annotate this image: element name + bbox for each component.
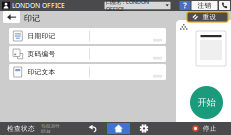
button[interactable]: Back xyxy=(3,11,20,23)
staticText: 印记文本 xyxy=(27,68,55,76)
staticText: 注销 xyxy=(197,1,211,10)
staticText: 检查状态 xyxy=(7,124,35,133)
button[interactable]: LONDON OFFICE xyxy=(2,0,65,11)
button[interactable]: 印记文本 xyxy=(9,64,166,80)
staticText: 停止 xyxy=(203,124,217,133)
staticText: 07:34 xyxy=(41,128,50,134)
staticText: 重设 xyxy=(203,13,217,21)
button[interactable]: 开始 xyxy=(190,86,223,119)
button[interactable]: 检查状态 xyxy=(0,122,59,135)
button[interactable]: Home xyxy=(107,123,130,134)
staticText: 印记 xyxy=(24,13,40,23)
staticText: 开始 xyxy=(197,97,215,108)
button[interactable]: 页码编号 xyxy=(9,46,166,62)
button[interactable]: Settings xyxy=(133,122,155,135)
button[interactable]: Help xyxy=(179,1,190,10)
staticText: 口座名：LONDON OFFICE xyxy=(106,0,149,13)
button[interactable]: 注销 xyxy=(191,1,217,10)
button[interactable]: Call xyxy=(219,1,230,10)
button[interactable]: 日期印记 xyxy=(9,28,166,44)
staticText: ? xyxy=(183,0,187,11)
staticText: 日期印记 xyxy=(27,32,55,40)
button[interactable]: 重设 xyxy=(187,12,228,22)
button[interactable]: 停止 xyxy=(178,122,231,135)
button[interactable]: Back xyxy=(82,122,104,135)
staticText: 页码编号 xyxy=(27,50,55,58)
button[interactable]: 口座名：LONDON OFFICE xyxy=(104,2,170,9)
staticText: 15.02.2019 xyxy=(41,123,59,128)
staticText: LONDON OFFICE xyxy=(12,1,65,10)
